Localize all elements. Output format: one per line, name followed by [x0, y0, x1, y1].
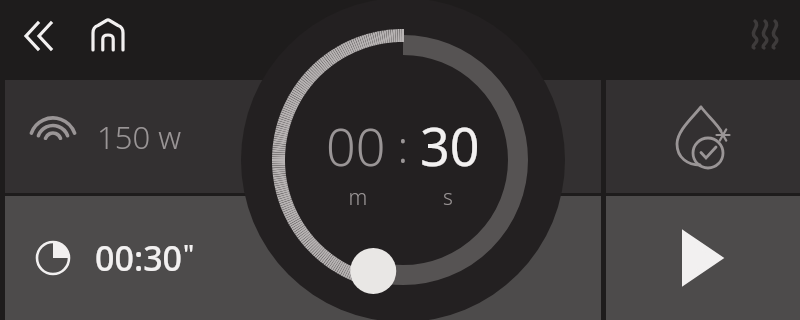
button[interactable]: Start — [606, 196, 800, 320]
button[interactable]: 150 w — [5, 80, 601, 193]
staticText: " — [183, 235, 195, 270]
staticText: 150 w — [97, 116, 181, 158]
staticText: : — [386, 116, 420, 176]
staticText: s — [403, 183, 493, 212]
button[interactable]: 00:30 — [5, 196, 601, 320]
button[interactable]: Steam — [744, 12, 788, 56]
button[interactable]: Back — [18, 14, 62, 58]
button[interactable]: Auto clean — [606, 80, 800, 193]
staticText: 00:30 — [95, 235, 183, 281]
staticText: m — [313, 183, 403, 212]
staticText: 30 — [420, 110, 480, 181]
button[interactable]: Home — [86, 14, 130, 58]
staticText: 00 — [326, 110, 386, 181]
